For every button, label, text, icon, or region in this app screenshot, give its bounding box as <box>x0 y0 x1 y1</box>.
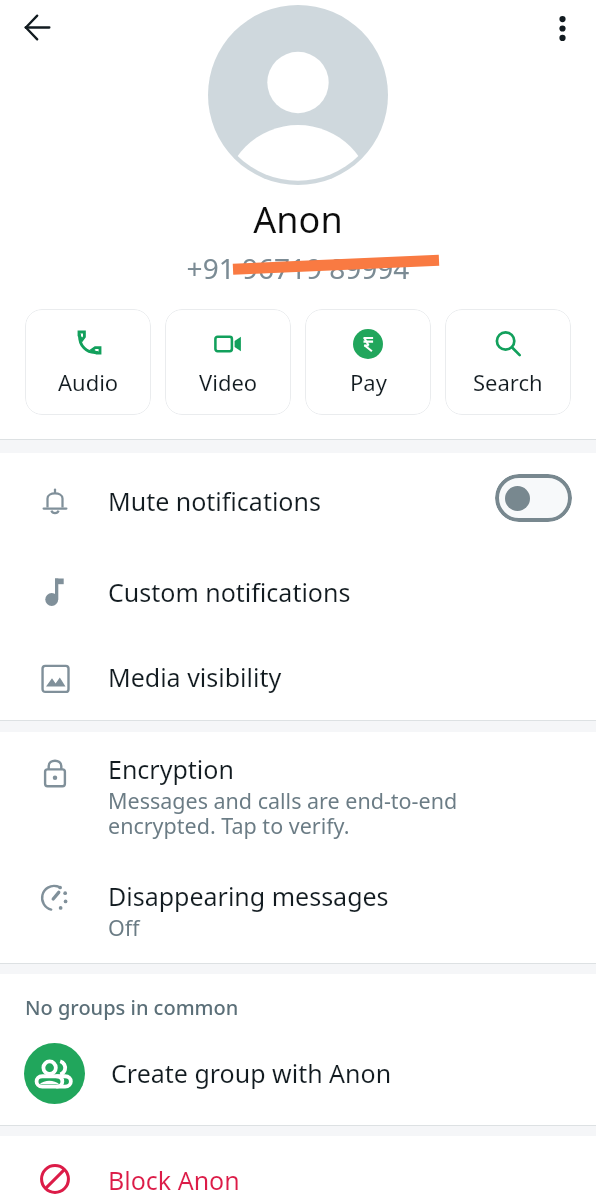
button[interactable]: Mute notifications toggle <box>495 474 572 522</box>
staticText: Anon <box>0 195 596 244</box>
staticText: Search <box>473 367 543 397</box>
staticText: Create group with Anon <box>111 1056 392 1090</box>
button[interactable]: Create group with Anon <box>0 1029 596 1117</box>
button[interactable]: Mute notifications <box>0 453 596 542</box>
staticText: Media visibility <box>108 660 282 694</box>
staticText: Encryption <box>108 752 234 786</box>
staticText: Block Anon <box>108 1163 240 1197</box>
button[interactable]: Pay <box>305 309 431 415</box>
button[interactable]: Back <box>11 1 63 53</box>
staticText: No groups in common <box>25 994 239 1021</box>
button[interactable]: More options <box>536 2 588 54</box>
staticText: Off <box>108 913 140 942</box>
button[interactable]: Encryption <box>0 732 596 864</box>
staticText: Custom notifications <box>108 575 351 609</box>
button[interactable]: Media visibility <box>0 631 596 720</box>
button[interactable]: Video <box>165 309 291 415</box>
staticText: Disappearing messages <box>108 879 389 913</box>
staticText: Audio <box>58 367 119 397</box>
button[interactable]: Custom notifications <box>0 542 596 631</box>
staticText: Mute notifications <box>108 484 321 518</box>
button[interactable]: Search <box>445 309 571 415</box>
staticText: Video <box>199 367 258 397</box>
staticText: Messages and calls are end-to-end encryp… <box>108 786 458 840</box>
button[interactable]: Audio <box>25 309 151 415</box>
staticText: +91 96719 89994 <box>0 249 596 287</box>
staticText: Pay <box>350 367 387 397</box>
button[interactable]: Block Anon <box>0 1136 596 1200</box>
button[interactable]: Disappearing messages <box>0 864 596 963</box>
